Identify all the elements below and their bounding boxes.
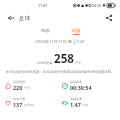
staticText: 11:41 xyxy=(38,3,48,8)
staticText: 跑圈 xyxy=(41,28,50,33)
staticText: 活动消耗 xyxy=(13,80,26,84)
staticText: 1.47 xyxy=(70,101,81,108)
button[interactable]: 跑圈 xyxy=(37,28,53,40)
button[interactable]: 平均心率 xyxy=(5,97,57,108)
button[interactable]: 详情 xyxy=(68,28,84,40)
button[interactable]: 活动消耗 xyxy=(5,80,57,91)
staticText: 运动时长 xyxy=(70,80,83,84)
staticText: 137 xyxy=(13,101,23,108)
staticText: 平均心率 xyxy=(13,97,26,101)
button[interactable]: 运动时长 xyxy=(62,80,120,91)
staticText: 足球 xyxy=(19,15,30,22)
staticText: 54 xyxy=(92,3,96,8)
staticText: 总消耗热量 xyxy=(37,61,53,65)
button[interactable]: 运动距离 xyxy=(62,97,120,108)
staticText: 00:30:54 xyxy=(70,84,92,91)
staticText: 258 xyxy=(54,51,74,67)
staticText: 54 xyxy=(97,3,101,8)
staticText: 本次运动的总消耗热量，包括运动中消耗和运动后的额外消耗热量总和。 xyxy=(0,70,120,74)
staticText: 千卡 xyxy=(24,86,30,90)
button[interactable]: 分享 xyxy=(103,12,115,24)
staticText: 次/分钟 xyxy=(24,103,35,107)
button[interactable]: 返回 xyxy=(5,12,17,24)
staticText: 公里 xyxy=(82,103,88,107)
staticText: 220 xyxy=(13,84,23,91)
staticText: 2025年11月11日 晚上7:47 xyxy=(0,39,120,45)
staticText: 千卡 xyxy=(75,61,82,65)
staticText: 运动距离 xyxy=(70,97,83,101)
staticText: 详情 xyxy=(72,28,81,33)
